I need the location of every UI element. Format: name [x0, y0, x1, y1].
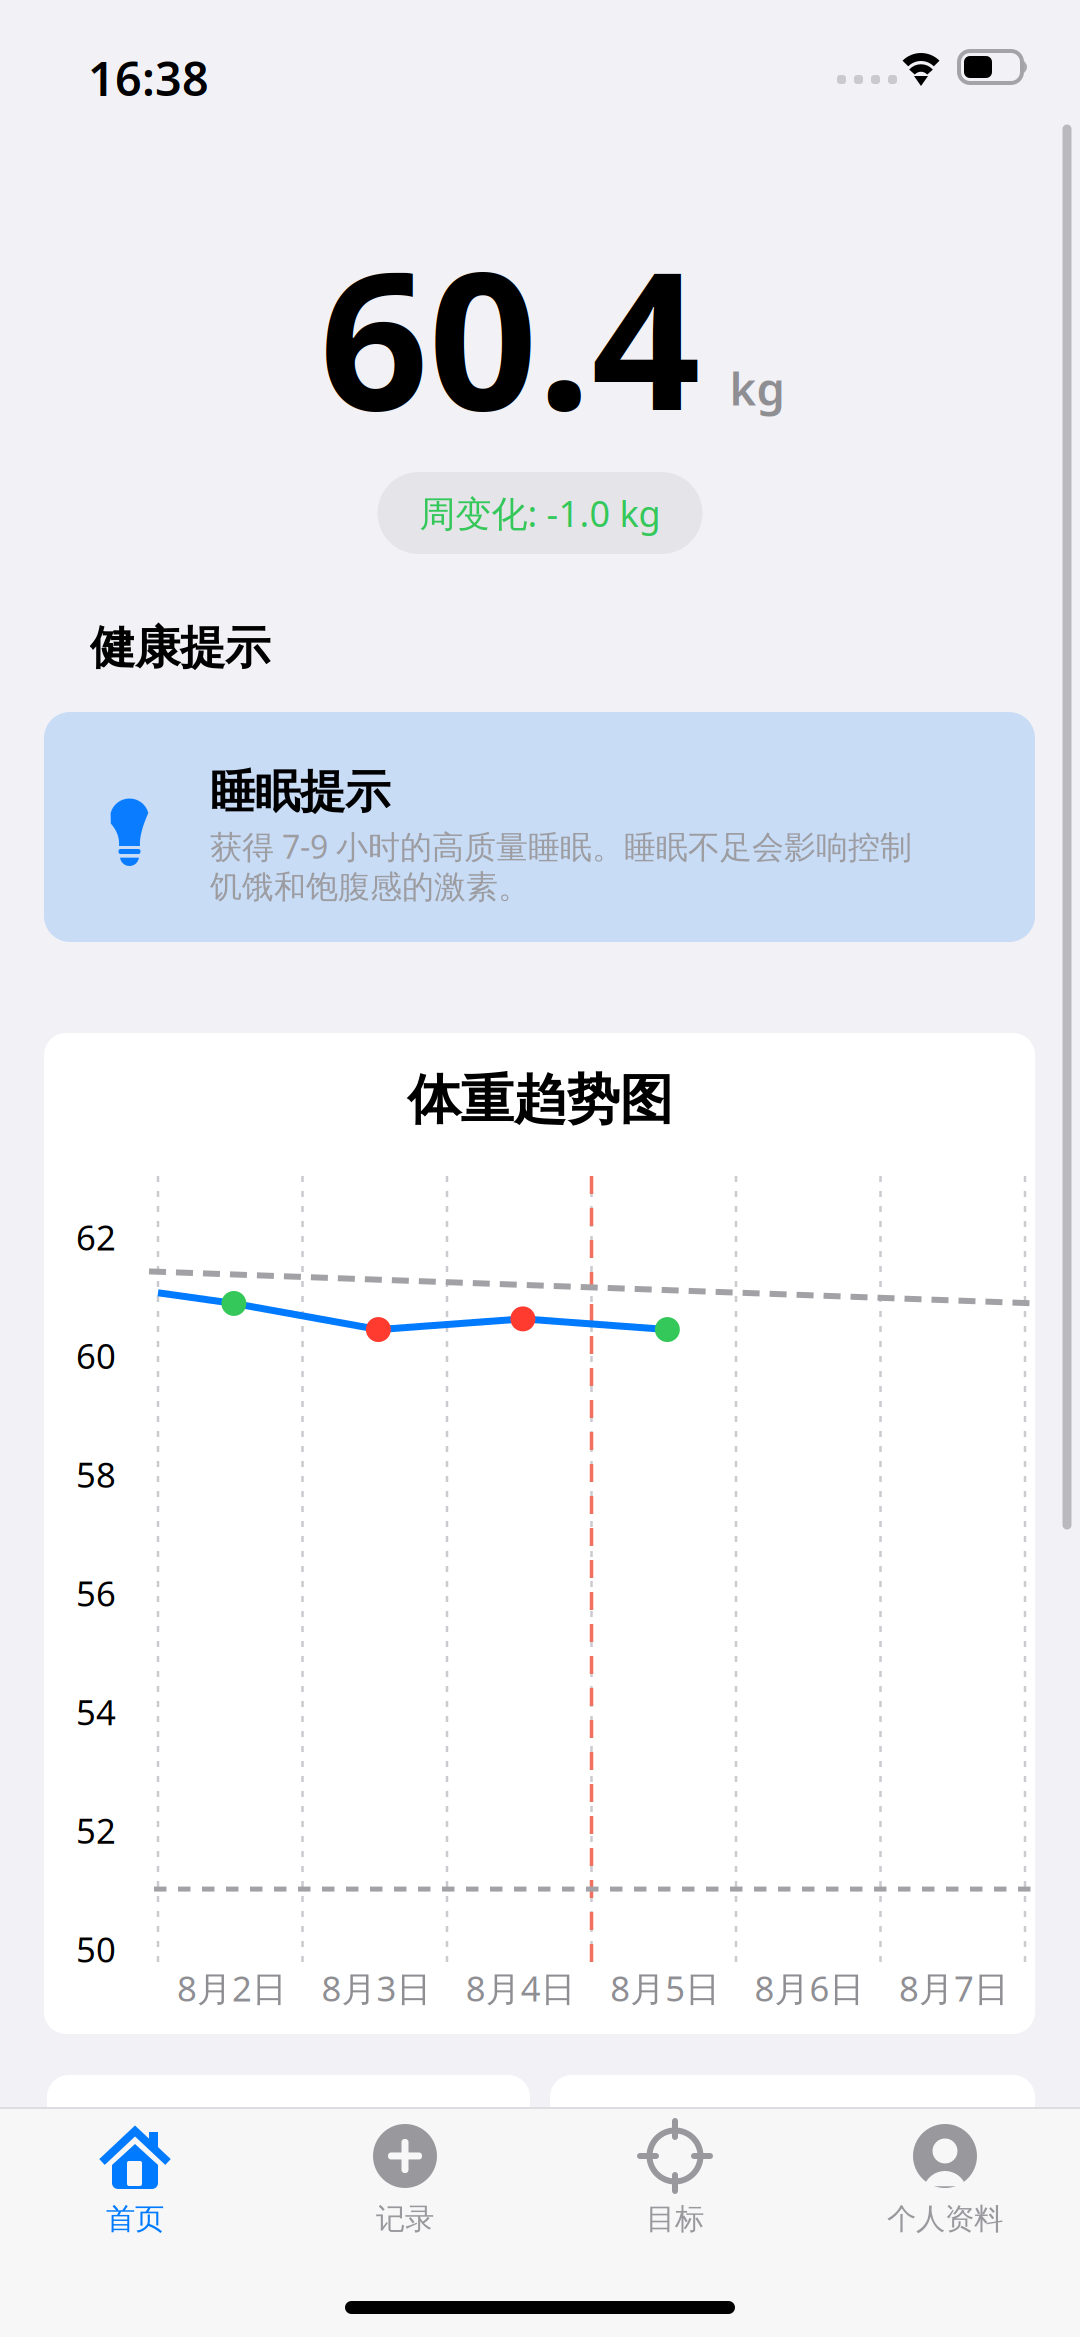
staticText: kg — [729, 358, 784, 418]
staticText: 50 — [76, 1926, 116, 1972]
staticText: 8月7日 — [899, 1965, 1009, 2011]
button[interactable]: 首页 — [0, 2111, 270, 2243]
staticText: 8月4日 — [466, 1965, 576, 2011]
staticText: 获得 7-9 小时的高质量睡眠。睡眠不足会影响控制饥饿和饱腹感的激素。 — [210, 825, 912, 907]
staticText: 记录 — [376, 2201, 434, 2237]
staticText: 56 — [76, 1570, 116, 1616]
staticText: 8月5日 — [610, 1965, 720, 2011]
staticText: 个人资料 — [887, 2201, 1003, 2237]
staticText: 体重趋势图 — [407, 1067, 672, 1133]
button[interactable]: 个人资料 — [810, 2111, 1080, 2243]
staticText: 60.4 — [319, 209, 700, 463]
staticText: 8月6日 — [755, 1965, 865, 2011]
staticText: 16:38 — [88, 47, 209, 109]
staticText: 健康提示 — [90, 620, 270, 676]
button[interactable]: 记录 — [270, 2111, 540, 2243]
staticText: 8月3日 — [321, 1965, 431, 2011]
button[interactable]: 目标 — [540, 2111, 810, 2243]
staticText: 8月2日 — [177, 1965, 287, 2011]
staticText: 60 — [76, 1333, 116, 1379]
staticText: 睡眠提示 — [210, 764, 390, 820]
staticText: 首页 — [106, 2201, 164, 2237]
staticText: 54 — [76, 1689, 116, 1735]
staticText: 58 — [76, 1451, 116, 1497]
staticText: 62 — [76, 1214, 116, 1260]
staticText: 52 — [76, 1807, 116, 1853]
staticText: 周变化: -1.0 kg — [419, 489, 660, 537]
staticText: 目标 — [646, 2201, 704, 2237]
